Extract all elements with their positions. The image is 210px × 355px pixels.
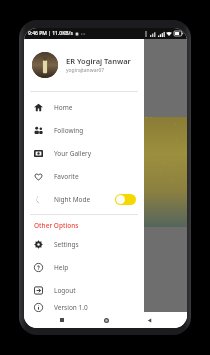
staticText: Logout: [54, 286, 76, 295]
staticText: Favorite: [54, 172, 79, 181]
button[interactable]: Home: [24, 96, 144, 119]
button[interactable]: Favorite: [24, 165, 144, 188]
staticText: Other Options: [34, 221, 79, 230]
button[interactable]: Download: [30, 300, 38, 308]
staticText: Help: [54, 263, 69, 272]
button[interactable]: Your Gallery: [24, 142, 144, 165]
button[interactable]: Home: [100, 314, 112, 326]
staticText: 9:46 PM | 11.0KB/s: [28, 30, 73, 37]
button[interactable]: Settings: [24, 233, 144, 256]
button[interactable]: Logout: [24, 279, 144, 302]
staticText: Version 1.0: [54, 303, 88, 312]
staticText: Your Gallery: [54, 149, 92, 158]
button[interactable]: Version 1.0: [24, 302, 144, 312]
button[interactable]: Share: [62, 300, 70, 308]
button[interactable]: ER Yogiraj Tanwar: [24, 39, 144, 91]
staticText: yogirajtanwar07: [66, 67, 105, 74]
button[interactable]: Back: [143, 314, 155, 326]
button[interactable]: Night Mode: [24, 188, 144, 211]
staticText: WEEK: [30, 121, 44, 128]
button[interactable]: Night mode toggle: [115, 194, 136, 205]
button[interactable]: Following: [24, 119, 144, 142]
staticText: Settings: [54, 240, 79, 249]
staticText: Home: [54, 103, 73, 112]
staticText: Following: [54, 126, 84, 135]
button[interactable]: Help: [24, 256, 144, 279]
staticText: Night Mode: [54, 195, 91, 204]
button[interactable]: Recent apps: [56, 314, 68, 326]
staticText: ER Yogiraj Tanwar: [66, 56, 131, 66]
